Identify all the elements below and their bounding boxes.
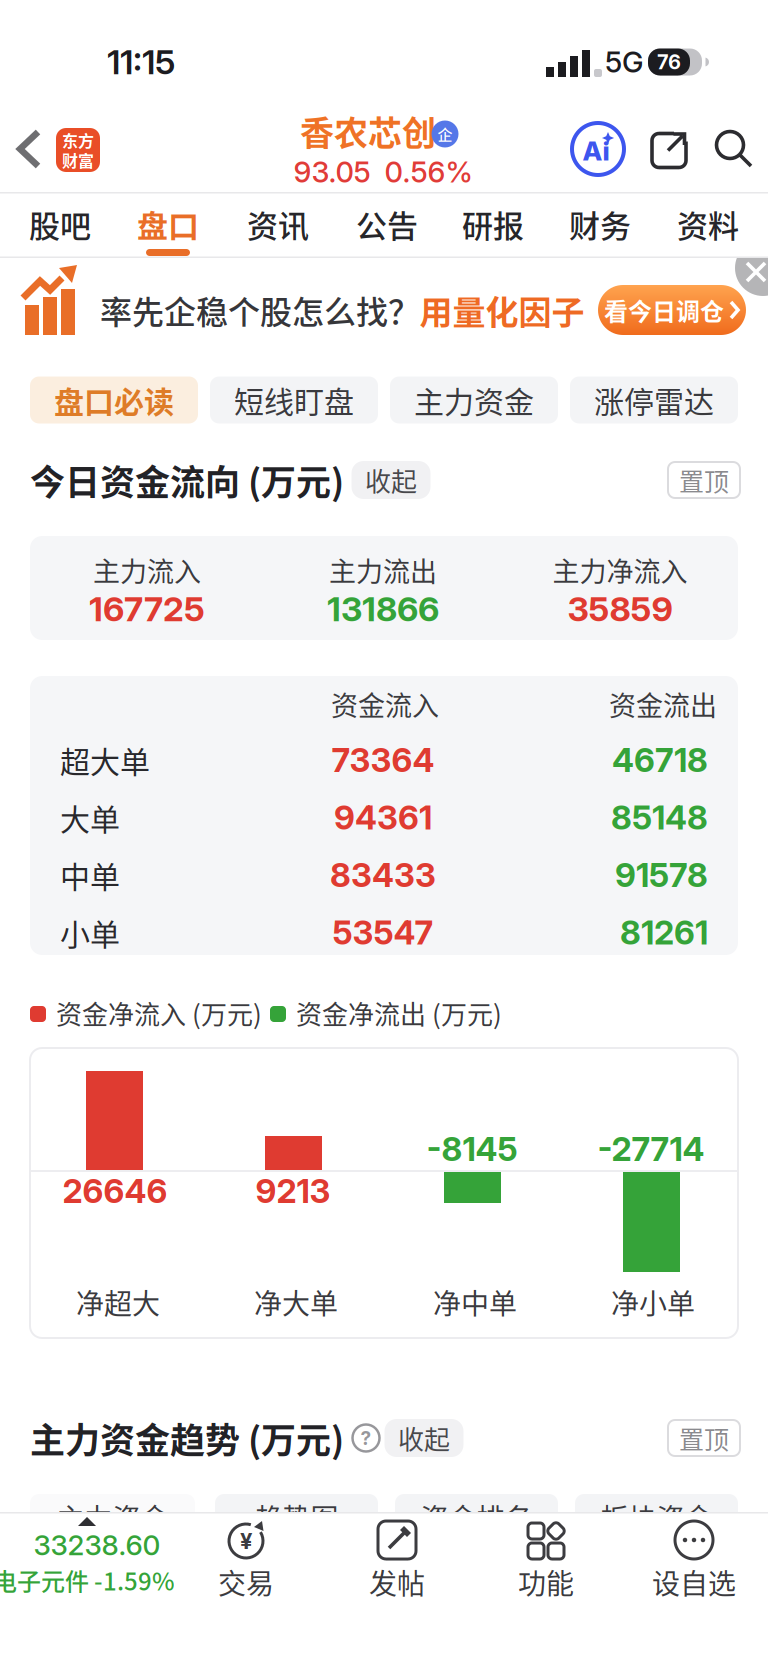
staticText: 46718 bbox=[612, 740, 708, 780]
staticText: -27714 bbox=[597, 1129, 704, 1169]
staticText: 资金流出 bbox=[609, 684, 717, 724]
staticText: 26646 bbox=[62, 1171, 167, 1211]
staticText: 53547 bbox=[332, 912, 433, 952]
staticText: 股吧 bbox=[29, 202, 91, 246]
staticText: 功能 bbox=[518, 1562, 574, 1602]
button[interactable]: 发帖 bbox=[341, 1520, 453, 1600]
staticText: 76 bbox=[657, 50, 681, 74]
button[interactable]: 公告 bbox=[337, 194, 437, 254]
staticText: 净大单 bbox=[254, 1282, 338, 1322]
button[interactable]: AI bbox=[570, 121, 626, 177]
staticText: 33238.60 bbox=[33, 1528, 160, 1562]
staticText: 167725 bbox=[89, 588, 205, 629]
staticText: 11:15 bbox=[107, 41, 175, 82]
staticText: 73364 bbox=[331, 740, 434, 780]
staticText: 率先企稳个股怎么找？ bbox=[100, 287, 420, 333]
staticText: 趋势图 bbox=[254, 1497, 338, 1537]
button[interactable]: 盘口 bbox=[118, 194, 218, 254]
staticText: 东方 bbox=[62, 128, 94, 151]
staticText: 9213 bbox=[255, 1171, 330, 1211]
staticText: 看今日调仓 bbox=[604, 293, 724, 327]
button[interactable]: 资料 bbox=[658, 194, 758, 254]
staticText: 资料 bbox=[677, 202, 739, 246]
staticText: 5G bbox=[605, 44, 643, 80]
staticText: 资金净流出 (万元) bbox=[296, 994, 502, 1032]
staticText: 今日资金流向 (万元) bbox=[30, 455, 344, 505]
button[interactable]: 资讯 bbox=[228, 194, 328, 254]
button[interactable]: 置顶 bbox=[668, 462, 740, 498]
staticText: 大单 bbox=[60, 796, 120, 839]
staticText: 研报 bbox=[462, 202, 524, 246]
button[interactable]: 收起 bbox=[351, 461, 430, 499]
staticText: 主力资金趋势 (万元) bbox=[30, 1413, 344, 1463]
button[interactable]: 功能 bbox=[489, 1520, 601, 1600]
staticText: 短线盯盘 bbox=[234, 378, 354, 422]
button[interactable]: 盘口必读 bbox=[30, 376, 198, 423]
button[interactable]: 33238.60 bbox=[0, 1514, 180, 1602]
button[interactable]: 板块资金 bbox=[575, 1494, 738, 1540]
staticText: 财务 bbox=[569, 202, 631, 246]
staticText: 小单 bbox=[60, 911, 120, 954]
staticText: 资金净流入 (万元) bbox=[56, 994, 262, 1032]
staticText: 净中单 bbox=[433, 1282, 517, 1322]
button[interactable]: 主力资金 bbox=[30, 1494, 195, 1540]
staticText: 涨停雷达 bbox=[594, 378, 714, 422]
staticText: 主力流入 bbox=[93, 550, 201, 590]
staticText: -8145 bbox=[426, 1129, 517, 1169]
staticText: 85148 bbox=[611, 797, 708, 837]
staticText: 资讯 bbox=[247, 202, 309, 246]
button[interactable]: ¥ bbox=[190, 1520, 302, 1600]
button[interactable]: 收起 bbox=[384, 1419, 463, 1457]
staticText: 收起 bbox=[398, 1419, 450, 1457]
staticText: 交易 bbox=[218, 1562, 274, 1602]
staticText: 净超大 bbox=[76, 1282, 160, 1322]
staticText: 93.05 0.56% bbox=[293, 154, 472, 190]
staticText: 94361 bbox=[334, 797, 432, 837]
button[interactable]: Close bbox=[730, 258, 768, 298]
staticText: 企 bbox=[437, 123, 452, 145]
button[interactable]: 趋势图 bbox=[215, 1494, 378, 1540]
staticText: 35859 bbox=[567, 588, 672, 629]
staticText: 板块资金 bbox=[600, 1497, 712, 1537]
staticText: 置顶 bbox=[679, 462, 729, 498]
button[interactable]: 研报 bbox=[443, 194, 543, 254]
staticText: 收起 bbox=[365, 461, 417, 499]
button[interactable]: 资金排名 bbox=[395, 1494, 558, 1540]
staticText: 资金排名 bbox=[420, 1497, 532, 1537]
button[interactable]: 财务 bbox=[550, 194, 650, 254]
staticText: 置顶 bbox=[679, 1420, 729, 1456]
staticText: ? bbox=[360, 1426, 371, 1449]
staticText: 发帖 bbox=[369, 1562, 425, 1602]
button[interactable]: 置顶 bbox=[668, 1420, 740, 1456]
button[interactable]: 短线盯盘 bbox=[210, 376, 378, 423]
button[interactable]: Search bbox=[714, 129, 754, 169]
staticText: 用量化因子 bbox=[419, 286, 584, 334]
staticText: ¥ bbox=[240, 1528, 252, 1554]
button[interactable]: 率先企稳个股怎么找？ bbox=[0, 258, 768, 362]
button[interactable]: Share bbox=[649, 128, 689, 169]
button[interactable]: 主力资金 bbox=[390, 376, 558, 423]
staticText: 公告 bbox=[356, 202, 418, 246]
staticText: 电子元件 -1.59% bbox=[0, 1563, 175, 1597]
staticText: 主力流出 bbox=[329, 550, 437, 590]
staticText: 主力资金 bbox=[414, 378, 534, 422]
staticText: 主力资金 bbox=[56, 1497, 168, 1537]
staticText: 中单 bbox=[60, 853, 120, 897]
staticText: 净小单 bbox=[611, 1282, 695, 1322]
staticText: 83433 bbox=[330, 855, 436, 895]
staticText: 131866 bbox=[327, 588, 439, 629]
staticText: 81261 bbox=[620, 912, 708, 952]
button[interactable]: 股吧 bbox=[10, 194, 110, 254]
button[interactable]: 东方财富 bbox=[55, 127, 101, 173]
staticText: 91578 bbox=[615, 855, 708, 895]
button[interactable]: 涨停雷达 bbox=[570, 376, 738, 423]
button[interactable]: Back bbox=[8, 128, 50, 170]
staticText: 主力净流入 bbox=[552, 550, 687, 590]
staticText: 盘口必读 bbox=[54, 378, 174, 422]
staticText: 资金流入 bbox=[331, 684, 439, 724]
staticText: 超大单 bbox=[60, 738, 150, 782]
staticText: 设自选 bbox=[652, 1562, 736, 1602]
staticText: 香农芯创 bbox=[300, 106, 436, 156]
staticText: Ai bbox=[582, 135, 609, 167]
button[interactable]: 设自选 bbox=[629, 1520, 759, 1600]
